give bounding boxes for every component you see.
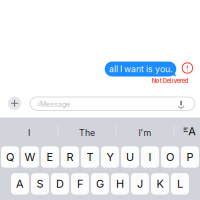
- button[interactable]: T: [81, 146, 99, 168]
- staticText: S: [36, 177, 43, 190]
- staticText: I: [148, 150, 151, 163]
- staticText: iMessage: [38, 100, 70, 108]
- button[interactable]: I'm: [116, 117, 174, 143]
- staticText: D: [56, 177, 64, 190]
- button[interactable]: Add attachment: [8, 97, 21, 110]
- staticText: I: [28, 127, 30, 138]
- staticText: all I want is you.: [109, 64, 172, 74]
- button[interactable]: I: [0, 117, 58, 143]
- button[interactable]: K: [151, 173, 169, 194]
- staticText: W: [24, 150, 35, 163]
- staticText: The: [79, 127, 95, 138]
- button[interactable]: iMessage: [30, 97, 195, 110]
- staticText: H: [116, 177, 124, 190]
- staticText: J: [137, 177, 143, 190]
- staticText: A: [188, 125, 196, 138]
- button[interactable]: The: [58, 117, 116, 143]
- button[interactable]: O: [161, 146, 179, 168]
- button[interactable]: H: [111, 173, 129, 194]
- button[interactable]: F: [71, 173, 89, 194]
- button[interactable]: S: [31, 173, 49, 194]
- button[interactable]: Q: [1, 146, 19, 168]
- button[interactable]: L: [171, 173, 189, 194]
- staticText: O: [166, 150, 174, 163]
- button[interactable]: U: [121, 146, 139, 168]
- button[interactable]: Text formatting: [174, 117, 200, 143]
- button[interactable]: I: [141, 146, 159, 168]
- staticText: K: [156, 177, 163, 190]
- button[interactable]: R: [61, 146, 79, 168]
- staticText: L: [177, 177, 183, 190]
- staticText: F: [77, 177, 83, 190]
- staticText: E: [46, 150, 53, 163]
- button[interactable]: E: [41, 146, 59, 168]
- staticText: G: [96, 177, 104, 190]
- staticText: Y: [106, 150, 113, 163]
- staticText: P: [186, 150, 193, 163]
- button[interactable]: G: [91, 173, 109, 194]
- staticText: Not Delivered: [152, 77, 189, 84]
- button[interactable]: Y: [101, 146, 119, 168]
- button[interactable]: P: [181, 146, 199, 168]
- button[interactable]: A: [11, 173, 29, 194]
- staticText: T: [86, 150, 93, 163]
- button[interactable]: W: [21, 146, 39, 168]
- button[interactable]: J: [131, 173, 149, 194]
- staticText: Q: [6, 150, 14, 163]
- staticText: I'm: [138, 127, 151, 138]
- staticText: U: [126, 150, 134, 163]
- staticText: R: [66, 150, 73, 163]
- button[interactable]: D: [51, 173, 69, 194]
- staticText: A: [16, 177, 24, 190]
- button[interactable]: Dictate: [178, 99, 184, 107]
